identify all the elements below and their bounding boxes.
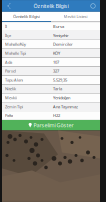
button[interactable]: Tapu Alanı: [2, 75, 100, 84]
button[interactable]: Mevkii: [2, 93, 100, 102]
button[interactable]: Pafta: [2, 111, 100, 120]
button[interactable]: Nitelik: [2, 84, 100, 93]
staticText: Yenidoğan: [53, 95, 70, 100]
staticText: İl: [5, 24, 7, 29]
button[interactable]: Parselimi Göster: [2, 120, 100, 130]
staticText: H22: [53, 113, 60, 118]
button[interactable]: Mahalle/Köy: [2, 40, 100, 49]
staticText: 107: [53, 59, 59, 65]
staticText: Öznitelik Bilgisi: [33, 2, 68, 9]
staticText: Mevkii: [5, 95, 17, 100]
staticText: Öznitelik Bilgisi: [13, 14, 40, 19]
button[interactable]: Zemin Tipi: [2, 102, 100, 111]
staticText: Zemin Tipi: [5, 104, 23, 109]
staticText: İlçe: [5, 33, 11, 38]
staticText: Nitelik: [5, 86, 16, 91]
staticText: 5.529,35: [53, 77, 67, 82]
button[interactable]: Mahalle Tipi: [2, 49, 100, 58]
staticText: Tapu Alanı: [5, 77, 23, 82]
staticText: Tarla: [53, 86, 62, 91]
button[interactable]: Bilgi: [87, 0, 98, 12]
button[interactable]: İl: [2, 22, 100, 31]
staticText: Parsel: [5, 68, 16, 74]
staticText: Mahalle Tipi: [5, 50, 26, 56]
staticText: Ana Taşınmaz: [53, 104, 78, 109]
button[interactable]: Öznitelik Bilgisi: [2, 12, 51, 21]
staticText: 327: [53, 68, 59, 74]
button[interactable]: Parsel: [2, 66, 100, 75]
staticText: Bursa: [53, 24, 64, 29]
button[interactable]: Geri: [3, 0, 14, 12]
staticText: Ada: [5, 59, 12, 65]
staticText: KÖY: [53, 50, 60, 56]
staticText: Mevkii Listesi: [63, 14, 87, 19]
staticText: Pafta: [5, 113, 13, 118]
staticText: Mahalle/Köy: [5, 42, 26, 47]
button[interactable]: İlçe: [2, 31, 100, 40]
button[interactable]: Ada: [2, 58, 100, 66]
staticText: Demirciler: [53, 42, 73, 47]
staticText: Yenişehir: [53, 33, 69, 38]
button[interactable]: Mevkii Listesi: [51, 12, 100, 21]
staticText: Parselimi Göster: [33, 122, 73, 129]
